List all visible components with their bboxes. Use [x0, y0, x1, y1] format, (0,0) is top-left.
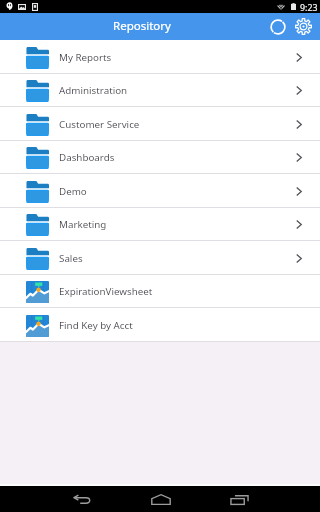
button[interactable]: Demo [0, 175, 320, 208]
staticText: Demo [59, 185, 87, 198]
button[interactable]: Marketing [0, 208, 320, 241]
button[interactable]: Administration [0, 74, 320, 107]
button[interactable]: Customer Service [0, 108, 320, 141]
button[interactable]: Home [137, 486, 184, 511]
staticText: My Reports [59, 51, 112, 64]
staticText: Dashboards [59, 151, 115, 164]
button[interactable]: Sales [0, 242, 320, 275]
staticText: Repository [113, 18, 171, 34]
staticText: ExpirationViewsheet [59, 285, 153, 298]
staticText: Find Key by Acct [59, 319, 133, 332]
staticText: Administration [59, 84, 128, 97]
staticText: Sales [59, 252, 83, 265]
button[interactable]: Settings [290, 13, 317, 40]
staticText: 9:23 [300, 2, 318, 14]
button[interactable]: ExpirationViewsheet [0, 275, 320, 308]
button[interactable]: Dashboards [0, 141, 320, 174]
button[interactable]: Find Key by Acct [0, 309, 320, 342]
button[interactable]: Recent apps [216, 486, 263, 511]
staticText: Customer Service [59, 118, 140, 131]
button[interactable]: My Reports [0, 41, 320, 74]
button[interactable]: Refresh [264, 13, 291, 40]
button[interactable]: Back [58, 486, 105, 511]
staticText: Marketing [59, 218, 107, 231]
